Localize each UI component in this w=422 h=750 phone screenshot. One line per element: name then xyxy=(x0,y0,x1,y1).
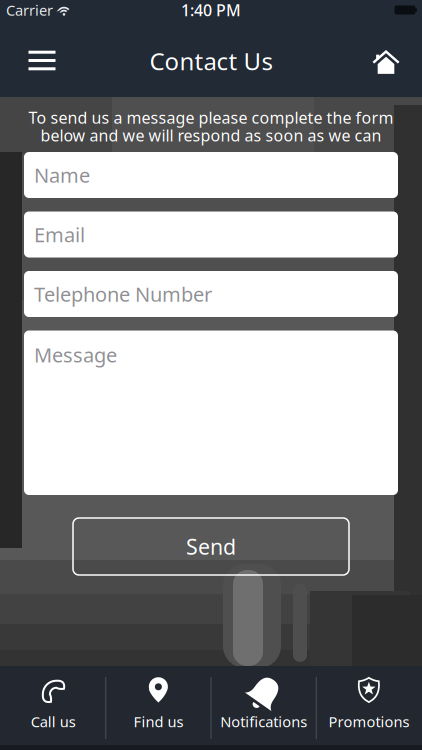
staticText: Call us xyxy=(31,712,76,731)
staticText: Promotions xyxy=(328,712,409,731)
staticText: Contact Us xyxy=(149,45,272,77)
button[interactable]: Promotions xyxy=(317,666,421,750)
staticText: Send xyxy=(186,532,236,561)
staticText: below and we will respond as soon as we … xyxy=(40,125,381,146)
button[interactable]: Name xyxy=(24,152,398,198)
button[interactable]: Send xyxy=(73,518,349,575)
button[interactable]: Call us xyxy=(1,666,105,750)
staticText: Message xyxy=(34,341,117,368)
button[interactable]: Email xyxy=(24,211,398,257)
staticText: Telephone Number xyxy=(34,281,212,307)
staticText: To send us a message please complete the… xyxy=(28,107,393,128)
button[interactable]: Notifications xyxy=(211,666,316,750)
staticText: 1:40 PM xyxy=(181,0,241,21)
button[interactable]: Menu xyxy=(20,36,64,80)
staticText: Notifications xyxy=(220,712,307,731)
button[interactable]: Message xyxy=(24,330,398,495)
staticText: Email xyxy=(34,221,85,248)
staticText: Find us xyxy=(133,712,183,731)
button[interactable]: Home xyxy=(364,34,408,82)
staticText: Name xyxy=(34,162,90,188)
button[interactable]: Find us xyxy=(106,666,210,750)
button[interactable]: Telephone Number xyxy=(24,271,398,317)
staticText: Carrier xyxy=(6,0,53,20)
